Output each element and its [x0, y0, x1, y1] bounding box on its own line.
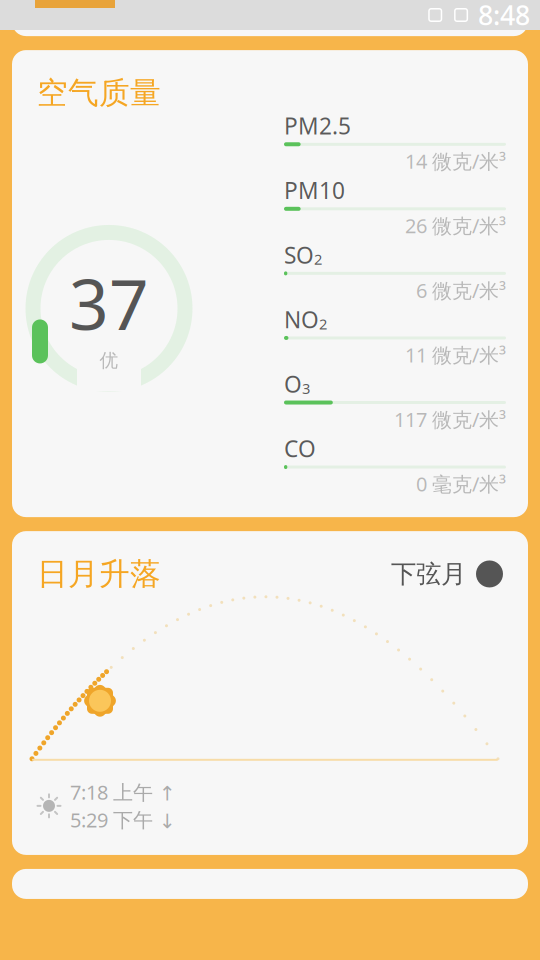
staticText: 5:29 下午 ↓: [70, 806, 176, 833]
staticText: SO: [284, 240, 314, 270]
staticText: PM2.5: [284, 111, 351, 141]
staticText: 下弦月: [391, 558, 466, 589]
staticText: 117 微克/米³: [394, 406, 506, 433]
button[interactable]: 下弦月: [391, 558, 503, 589]
staticText: 37: [69, 257, 149, 349]
staticText: CO: [284, 433, 316, 464]
staticText: NO: [284, 304, 319, 334]
staticText: 8:48: [478, 0, 530, 33]
staticText: 26 微克/米³: [405, 212, 506, 239]
staticText: 8:48 上午: [37, 0, 134, 18]
staticText: 7:18 上午 ↑: [70, 779, 176, 805]
staticText: 0 毫克/米³: [416, 471, 506, 497]
staticText: 2: [319, 314, 327, 333]
staticText: 2: [314, 249, 322, 269]
staticText: O: [284, 369, 302, 399]
staticText: 10:47 上午: [393, 0, 503, 18]
staticText: 11 微克/米³: [405, 341, 506, 368]
staticText: 空气质量: [37, 74, 161, 112]
staticText: 日月升落: [37, 555, 161, 593]
staticText: 优: [99, 349, 118, 372]
staticText: 3: [302, 378, 310, 398]
staticText: 14 微克/米³: [405, 148, 506, 174]
staticText: PM10: [284, 175, 345, 205]
staticText: 6 微克/米³: [416, 277, 506, 303]
